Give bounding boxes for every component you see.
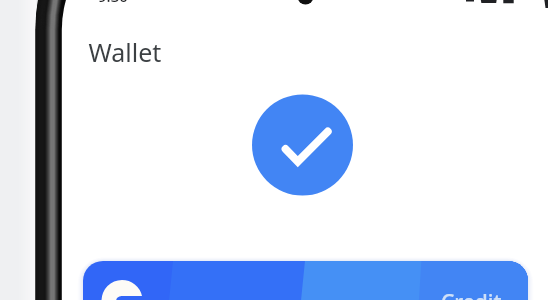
button[interactable]: Wallet payment confirmed (0, 0, 548, 300)
